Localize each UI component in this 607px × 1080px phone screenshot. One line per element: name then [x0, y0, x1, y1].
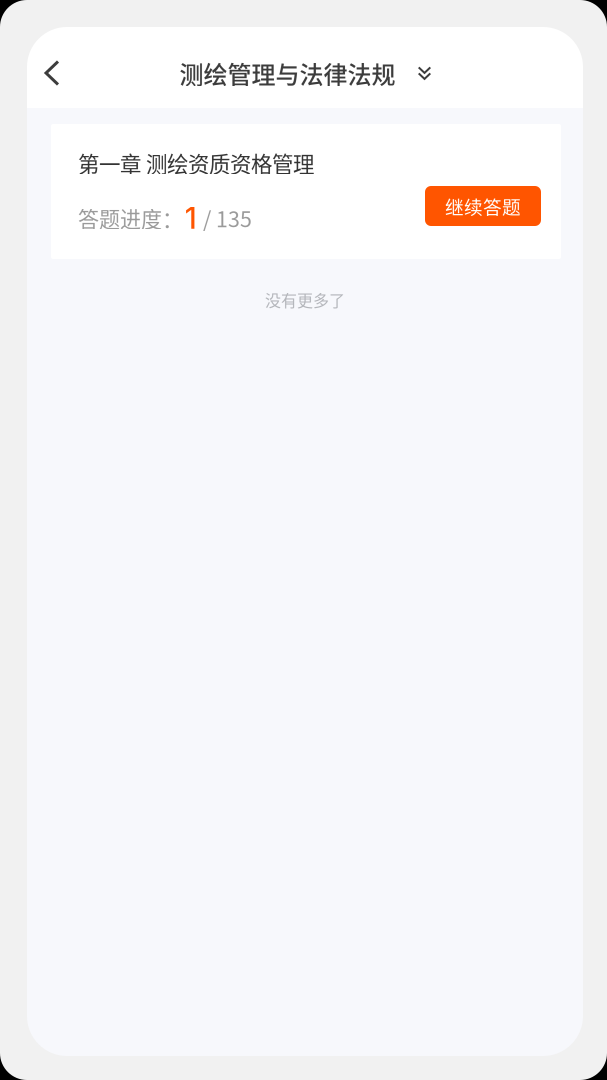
button[interactable]: Show chapter list: [407, 50, 441, 96]
staticText: 第一章 测绘资质资格管理: [78, 147, 314, 179]
button[interactable]: 继续答题: [425, 186, 541, 226]
staticText: 没有更多了: [265, 288, 345, 311]
staticText: 1: [185, 200, 197, 236]
button[interactable]: Back: [30, 46, 74, 100]
staticText: 测绘管理与法律法规: [179, 56, 395, 90]
button[interactable]: 第一章 测绘资质资格管理: [51, 124, 314, 259]
staticText: / 135: [203, 203, 252, 233]
staticText: 答题进度：: [78, 203, 183, 233]
staticText: 继续答题: [445, 192, 521, 219]
